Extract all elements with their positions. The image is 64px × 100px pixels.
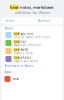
button[interactable]: Sorted (1, 17, 62, 24)
staticText: photos (19, 56, 30, 59)
staticText: Drawing ideas (13, 51, 32, 55)
button[interactable]: Show more in Notes (1, 63, 62, 69)
staticText: Notes (4, 27, 12, 30)
staticText: Sorted (5, 19, 14, 23)
button[interactable]: bear (1, 47, 62, 55)
staticText: Markdown reference (13, 43, 41, 47)
staticText: tips (19, 40, 25, 43)
staticText: Apps (4, 70, 11, 74)
staticText: Getting started with notes (13, 35, 50, 39)
staticText: bear (13, 56, 19, 59)
staticText: bear (13, 32, 19, 35)
staticText: app intro (19, 32, 33, 35)
staticText: bear (13, 48, 19, 51)
staticText: Images and media (13, 59, 37, 63)
button[interactable]: bear (1, 31, 62, 39)
staticText: bear (13, 40, 19, 43)
staticText: notes, markdown (19, 4, 54, 10)
staticText: sketch (19, 48, 28, 51)
button[interactable]: bear (1, 39, 62, 47)
staticText: Modified (37, 19, 50, 23)
staticText: with Bear for iPhone (14, 10, 49, 15)
staticText: Bear (12, 77, 18, 81)
staticText: Show more in Notes (4, 64, 32, 68)
staticText: bear (10, 4, 19, 10)
button[interactable]: Bear (1, 75, 62, 83)
button[interactable]: bear (1, 55, 62, 63)
